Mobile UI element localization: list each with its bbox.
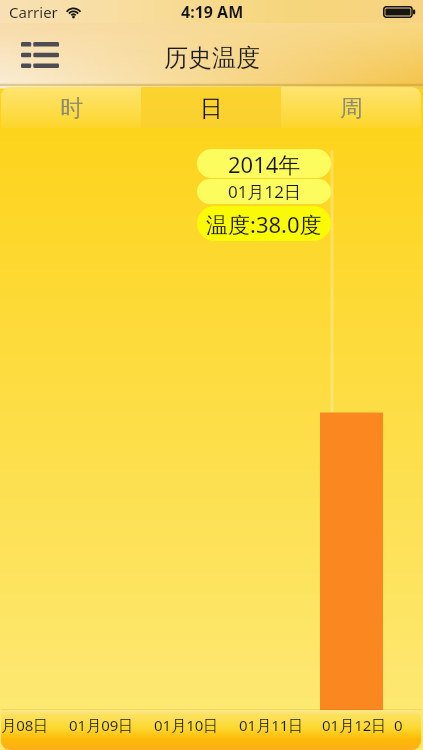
- staticText: 01月09日: [69, 715, 134, 735]
- staticText: 温度:38.0度: [206, 209, 322, 239]
- staticText: 4:19 AM: [181, 1, 244, 23]
- button[interactable]: 时: [1, 87, 141, 128]
- staticText: 01月08日: [1, 715, 49, 735]
- staticText: 01月12日: [322, 715, 387, 735]
- staticText: 01月12日: [228, 180, 301, 203]
- staticText: 历史温度: [164, 43, 260, 73]
- button[interactable]: 周: [281, 87, 421, 128]
- staticText: 周: [340, 94, 363, 123]
- staticText: 时: [60, 94, 83, 123]
- staticText: Carrier: [9, 2, 58, 22]
- button[interactable]: 日: [141, 87, 281, 128]
- staticText: 2014年: [228, 149, 301, 178]
- staticText: 01月11日: [239, 715, 304, 735]
- staticText: 01月10日: [154, 715, 219, 735]
- button[interactable]: Menu: [14, 29, 66, 81]
- staticText: 日: [200, 94, 223, 123]
